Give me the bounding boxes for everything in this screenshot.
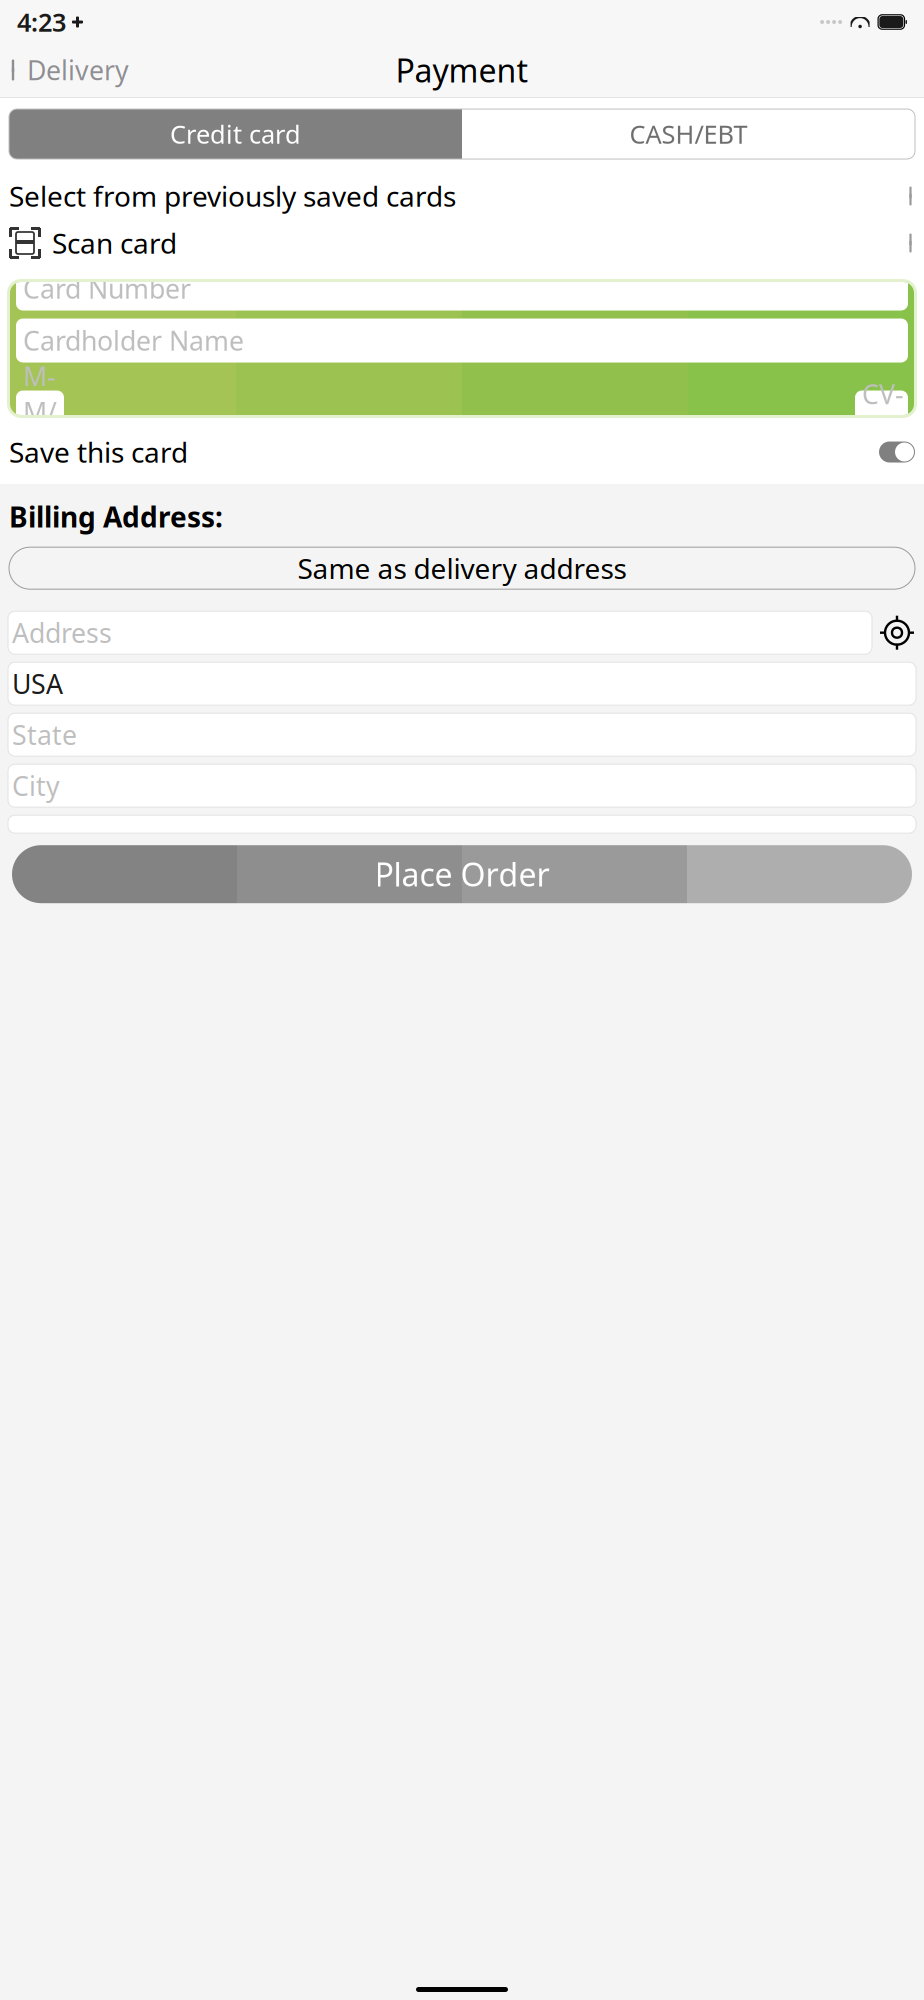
staticText: CVV — [862, 376, 904, 447]
staticText: 4:23 — [17, 5, 66, 39]
button[interactable]: Credit card — [9, 109, 462, 159]
staticText: Credit card — [170, 117, 301, 151]
button[interactable]: Use current location — [878, 614, 916, 652]
staticText: Payment — [395, 49, 528, 91]
button[interactable]: Same as delivery address — [9, 547, 915, 589]
button[interactable]: Delivery — [0, 46, 129, 94]
staticText: Place Order — [374, 853, 549, 895]
staticText: Save this card — [9, 433, 188, 471]
button[interactable]: Select from previously saved cards — [0, 172, 924, 220]
button[interactable]: Save this card — [879, 441, 915, 463]
button[interactable]: CASH/EBT — [462, 109, 915, 159]
staticText: Same as delivery address — [297, 550, 626, 587]
staticText: USA — [12, 666, 63, 701]
staticText: City — [12, 768, 60, 803]
staticText: Delivery — [27, 52, 129, 88]
staticText: Address — [12, 615, 112, 650]
staticText: Card Number — [23, 271, 191, 306]
staticText: Select from previously saved cards — [9, 177, 456, 215]
staticText: State — [12, 717, 77, 752]
staticText: Cardholder Name — [23, 323, 244, 358]
staticText: Scan card — [52, 224, 177, 262]
button[interactable]: Place Order — [12, 845, 912, 903]
staticText: MM/YY — [23, 358, 57, 465]
staticText: Billing Address: — [9, 498, 223, 535]
button[interactable]: Scan card — [0, 220, 924, 266]
staticText: CASH/EBT — [629, 117, 747, 151]
